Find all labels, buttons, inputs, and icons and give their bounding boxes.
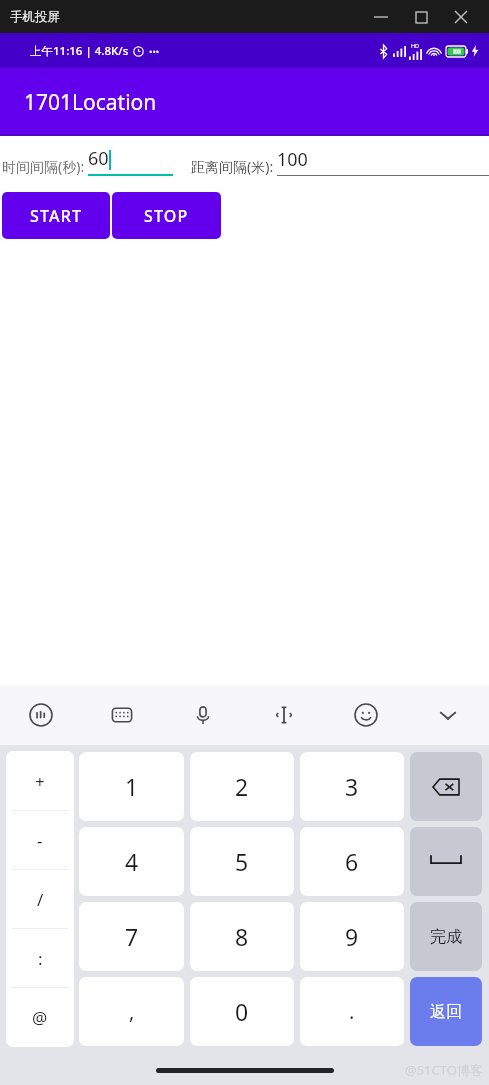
button[interactable]: / [6, 870, 74, 929]
staticText: 1701Location [24, 88, 157, 117]
button[interactable]: 1 [79, 752, 184, 821]
button[interactable]: : [6, 929, 74, 988]
button[interactable]: Emoji [325, 685, 407, 745]
button[interactable]: START [2, 192, 110, 239]
staticText: 2 [235, 771, 249, 802]
staticText: 6 [345, 846, 359, 877]
button[interactable]: Maximize [401, 2, 441, 32]
staticText: START [30, 205, 83, 227]
button[interactable]: Close [441, 2, 481, 32]
button[interactable]: Return [410, 977, 482, 1046]
staticText: 5 [235, 846, 249, 877]
staticText: . [349, 998, 355, 1025]
staticText: 完成 [430, 927, 462, 947]
staticText: 4 [125, 846, 139, 877]
button[interactable]: 100 [277, 147, 489, 176]
staticText: / [37, 888, 44, 911]
staticText: ••• [149, 45, 160, 57]
staticText: 8 [235, 921, 249, 952]
button[interactable]: - [6, 811, 74, 870]
button[interactable]: , [79, 977, 184, 1046]
staticText: 上午11:16 | 4.8K/s [30, 43, 129, 59]
button[interactable]: Hide keyboard [407, 685, 489, 745]
staticText: + [35, 770, 45, 793]
button[interactable]: Backspace [410, 752, 482, 821]
button[interactable]: 3 [300, 752, 404, 821]
button[interactable]: Voice input [162, 685, 243, 745]
staticText: 3 [345, 771, 359, 802]
button[interactable]: 60 [88, 146, 173, 176]
button[interactable]: 0 [190, 977, 294, 1046]
staticText: : [38, 947, 43, 970]
staticText: 9 [345, 921, 359, 952]
button[interactable]: 7 [79, 902, 184, 971]
staticText: STOP [144, 205, 189, 227]
button[interactable]: 5 [190, 827, 294, 896]
staticText: 1 [125, 771, 139, 802]
staticText: HD [411, 42, 420, 49]
button[interactable]: Keyboard layout [81, 685, 162, 745]
button[interactable]: 4 [79, 827, 184, 896]
staticText: 0 [235, 996, 249, 1027]
button[interactable]: @ [6, 988, 74, 1047]
button[interactable]: 2 [190, 752, 294, 821]
staticText: @51CTO博客 [405, 1061, 483, 1079]
button[interactable]: Minimize [361, 2, 401, 32]
button[interactable]: Space [410, 827, 482, 896]
staticText: 60 [88, 146, 109, 171]
button[interactable]: Move cursor [243, 685, 325, 745]
staticText: 时间间隔(秒): [2, 157, 85, 176]
button[interactable]: Done [410, 902, 482, 971]
staticText: 距离间隔(米): [191, 157, 274, 176]
button[interactable]: + [6, 751, 74, 811]
staticText: 80 [453, 47, 462, 57]
button[interactable]: . [300, 977, 404, 1046]
staticText: - [37, 829, 43, 852]
button[interactable]: 8 [190, 902, 294, 971]
staticText: 100 [277, 147, 308, 172]
button[interactable]: 6 [300, 827, 404, 896]
staticText: 手机投屏 [10, 9, 60, 25]
staticText: 返回 [430, 1002, 462, 1022]
staticText: @ [32, 1006, 48, 1029]
button[interactable]: Input method [0, 685, 81, 745]
staticText: 7 [125, 921, 139, 952]
staticText: , [129, 998, 135, 1025]
button[interactable]: 9 [300, 902, 404, 971]
button[interactable]: STOP [112, 192, 221, 239]
